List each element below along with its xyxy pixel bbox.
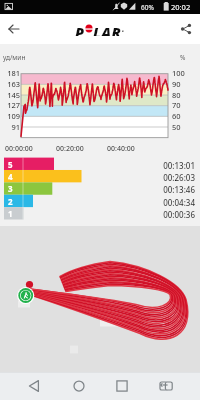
staticText: 00:04:34 (150, 197, 195, 208)
button[interactable]: 3 (4, 182, 52, 194)
staticText: 00:13:01 (150, 160, 195, 171)
button[interactable]: Switch keyboard (153, 373, 179, 399)
staticText: 60 (172, 111, 181, 121)
staticText: 00:00:00 (5, 144, 33, 154)
staticText: 60% (141, 3, 154, 12)
staticText: 90 (172, 79, 181, 89)
button[interactable]: 2 (4, 195, 33, 207)
staticText: 3 (8, 183, 13, 194)
button[interactable]: Home (66, 373, 92, 399)
staticText: 145 (0, 90, 20, 100)
staticText: 2 (8, 196, 13, 207)
staticText: P (75, 22, 85, 36)
button[interactable]: Share (172, 15, 200, 43)
staticText: 20:02 (171, 2, 191, 12)
staticText: 00:13:46 (150, 184, 195, 195)
staticText: 50 (172, 122, 181, 132)
staticText: 00:40:00 (107, 144, 135, 154)
staticText: 100 (172, 68, 185, 78)
button[interactable]: 4 (4, 170, 82, 182)
button[interactable]: 1 (4, 207, 24, 219)
staticText: % (180, 53, 186, 62)
staticText: 181 (0, 68, 20, 78)
staticText: 109 (0, 111, 20, 121)
staticText: 4 (8, 171, 13, 182)
staticText: 5 (8, 159, 13, 170)
button[interactable]: 5 (4, 158, 54, 170)
button[interactable]: Recent apps (109, 373, 135, 399)
staticText: уд/мин (3, 53, 26, 62)
staticText: 80 (172, 90, 181, 100)
staticText: . (122, 23, 125, 34)
staticText: 00:00:36 (150, 209, 195, 220)
staticText: 00:26:03 (150, 172, 195, 183)
staticText: 00:20:00 (56, 144, 84, 154)
staticText: LAR (93, 22, 122, 36)
staticText: 70 (172, 100, 181, 110)
staticText: 163 (0, 79, 20, 89)
staticText: 127 (0, 100, 20, 110)
staticText: 1 (8, 208, 13, 219)
button[interactable]: Back (0, 15, 28, 43)
button[interactable]: Back (21, 373, 47, 399)
staticText: 91 (0, 122, 20, 132)
